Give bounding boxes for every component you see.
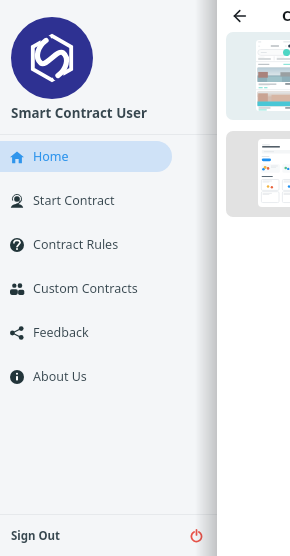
button[interactable]: Feedback: [0, 317, 217, 348]
button[interactable]: [226, 32, 290, 120]
staticText: Smart Contract User: [11, 104, 147, 122]
staticText: Start Contract: [33, 192, 115, 209]
button[interactable]: [226, 131, 290, 217]
staticText: Contracts: [282, 6, 290, 25]
button[interactable]: Start Contract: [0, 185, 217, 216]
staticText: Feedback: [33, 324, 89, 341]
button[interactable]: Sign Out: [0, 515, 217, 556]
staticText: About Us: [33, 368, 87, 385]
button[interactable]: Back: [231, 7, 249, 25]
staticText: Sign Out: [11, 528, 61, 544]
button[interactable]: Home: [0, 141, 172, 172]
staticText: Custom Contracts: [33, 280, 138, 297]
button[interactable]: Contract Rules: [0, 229, 217, 260]
staticText: Home: [33, 148, 69, 165]
button[interactable]: About Us: [0, 361, 217, 392]
button[interactable]: Custom Contracts: [0, 273, 217, 304]
staticText: Contract Rules: [33, 236, 119, 253]
